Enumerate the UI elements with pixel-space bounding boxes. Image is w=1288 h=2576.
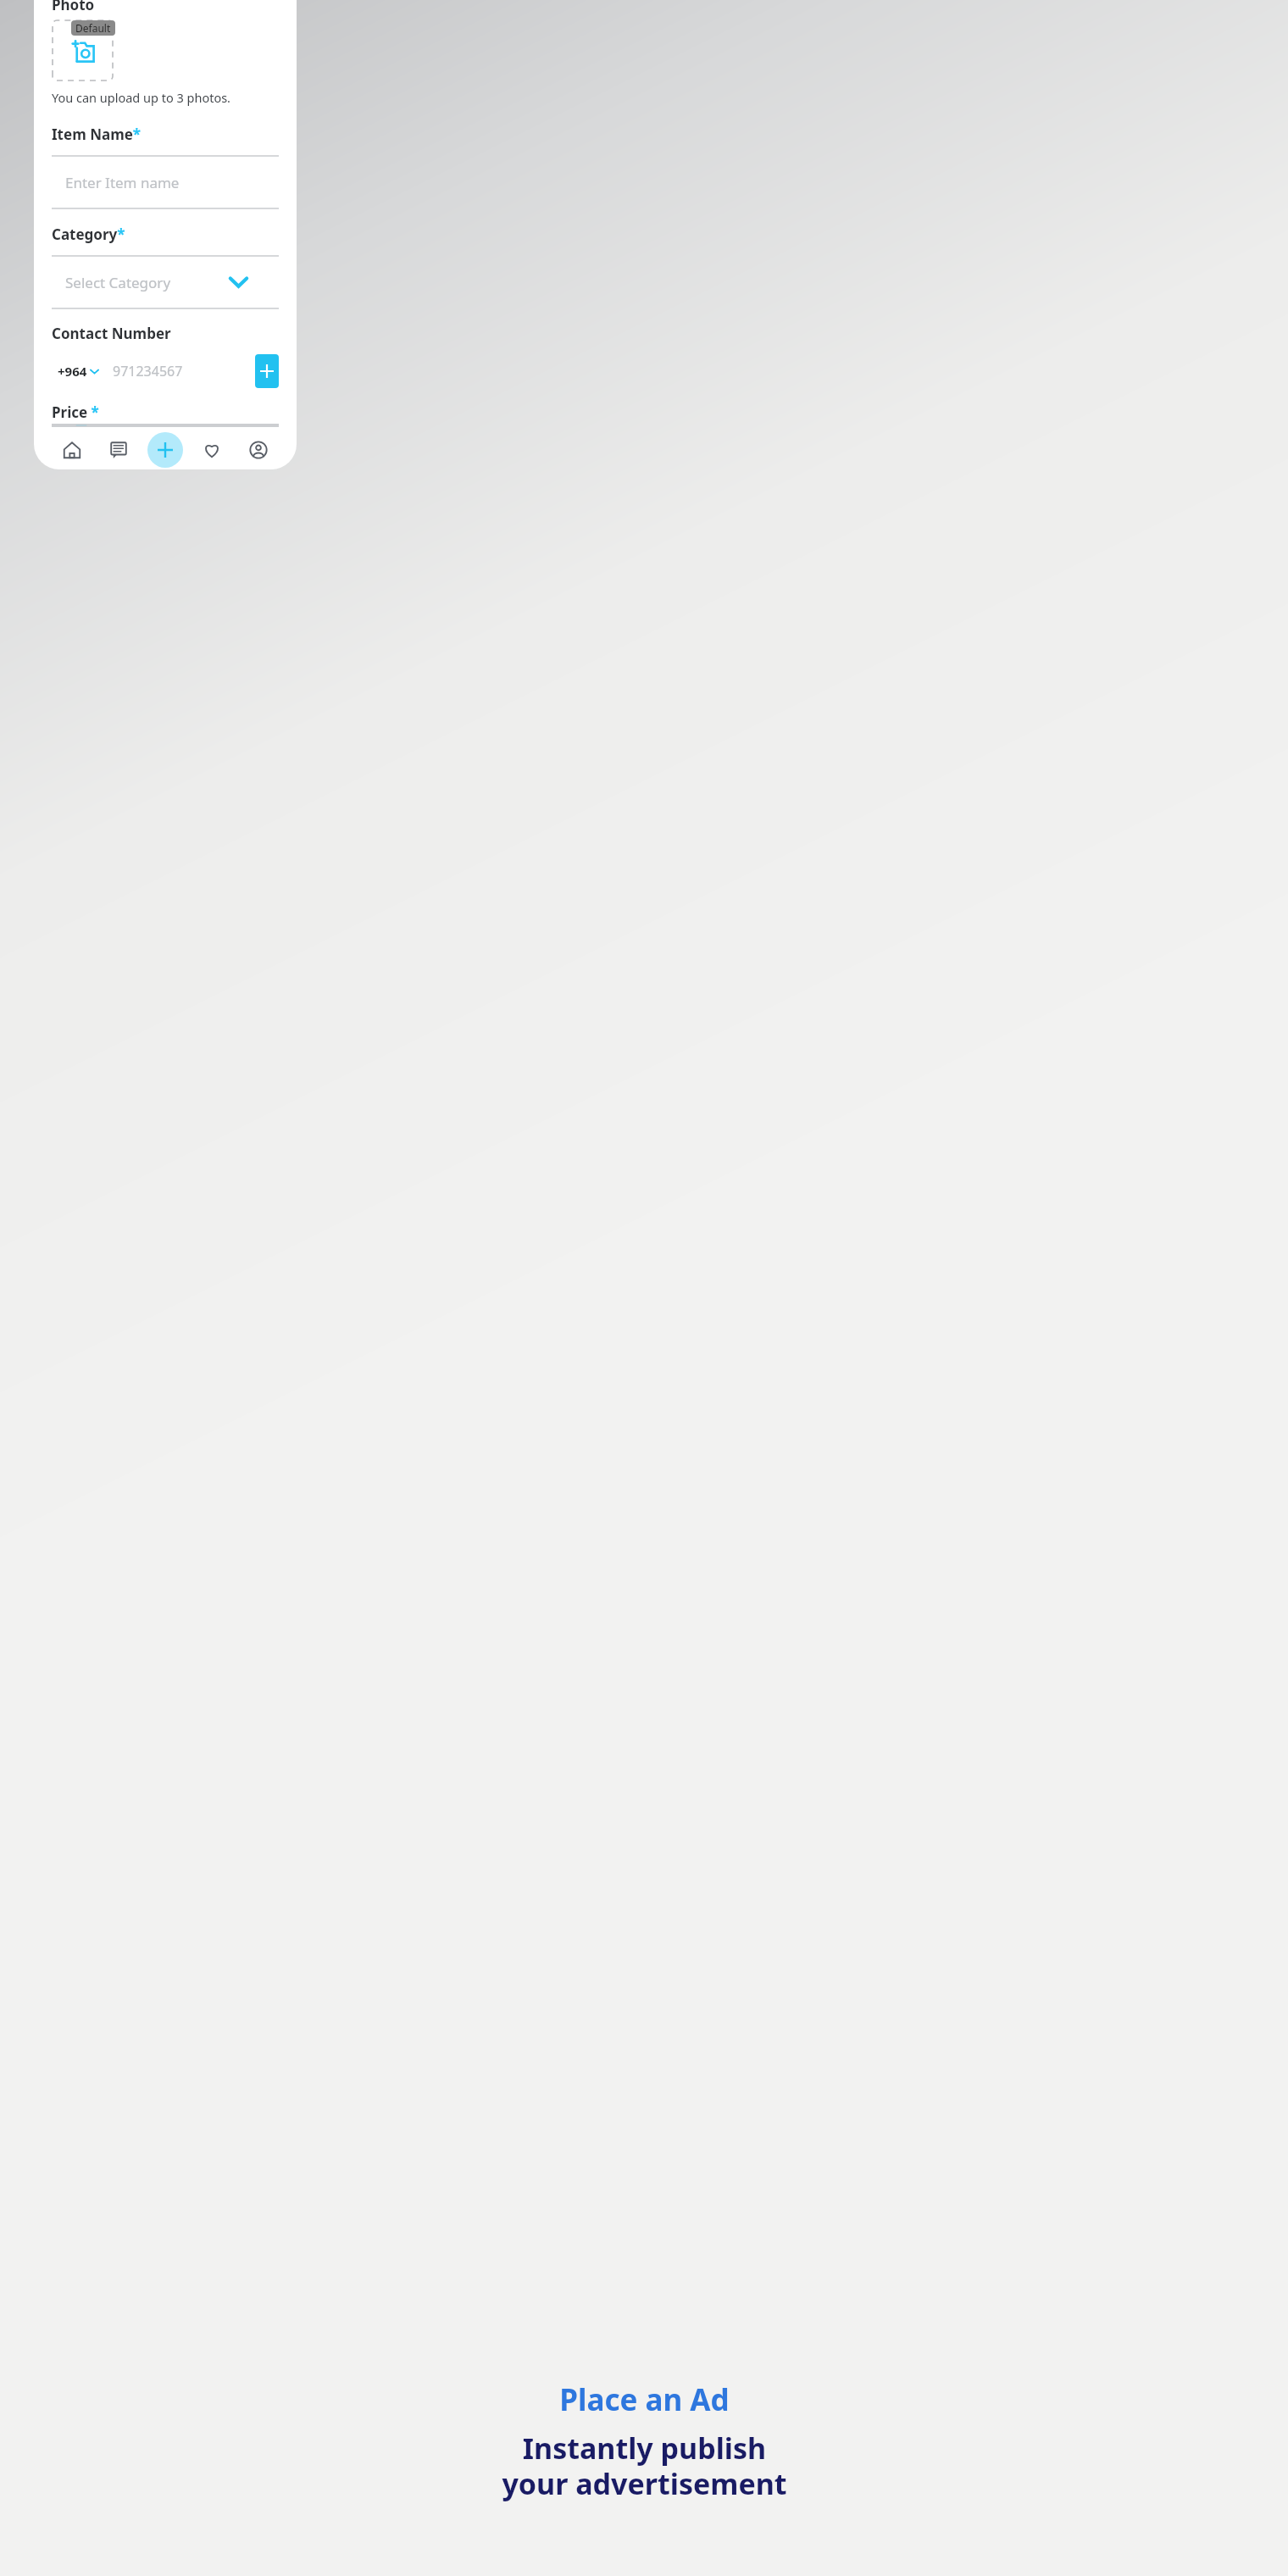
staticText: Category* bbox=[52, 225, 125, 244]
staticText: +964 bbox=[58, 363, 87, 380]
button[interactable]: Enter Item name bbox=[52, 155, 279, 209]
staticText: 971234567 bbox=[113, 362, 183, 380]
staticText: Default bbox=[75, 21, 111, 35]
button[interactable]: Add bbox=[147, 432, 183, 468]
staticText: Place an Ad bbox=[559, 2379, 730, 2420]
staticText: Enter Item name bbox=[65, 173, 180, 192]
button[interactable]: 971234567 bbox=[104, 354, 253, 388]
button[interactable]: Home bbox=[54, 432, 90, 468]
button[interactable]: Favorites bbox=[194, 432, 230, 468]
staticText: Item Name* bbox=[52, 125, 142, 144]
staticText: Price * bbox=[52, 402, 99, 422]
staticText: Photo bbox=[52, 0, 95, 14]
button[interactable]: Messages bbox=[101, 432, 136, 468]
button[interactable]: Add phone number bbox=[255, 354, 279, 388]
staticText: Instantly publish your advertisement bbox=[502, 2429, 787, 2503]
staticText: You can upload up to 3 photos. bbox=[52, 89, 231, 106]
button[interactable]: Profile bbox=[241, 432, 276, 468]
button[interactable]: Select Category bbox=[52, 255, 279, 309]
button[interactable]: +964 bbox=[52, 354, 104, 388]
staticText: Contact Number bbox=[52, 324, 171, 343]
button[interactable]: Default bbox=[52, 19, 114, 81]
staticText: Select Category bbox=[65, 273, 171, 292]
